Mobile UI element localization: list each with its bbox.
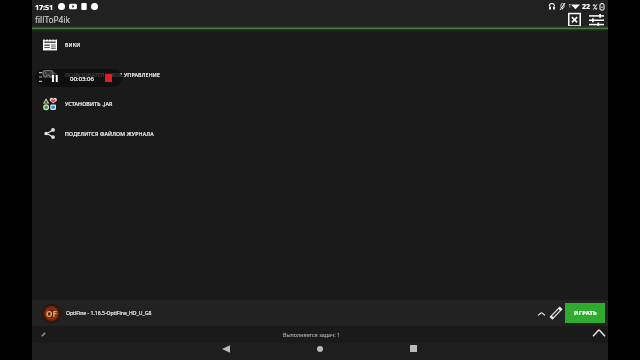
staticText: ВИКИ xyxy=(65,41,81,48)
button[interactable]: УСТАНОВИТЬ .JAR xyxy=(32,88,608,118)
staticText: OptiFine - 1.16.5-OptiFine_HD_U_G8 xyxy=(66,310,152,317)
button[interactable]: Screen recorder controls xyxy=(35,69,122,87)
button[interactable]: Expand xyxy=(535,307,548,320)
button[interactable]: ВИКИ xyxy=(32,29,608,59)
staticText: fillToP4ik xyxy=(35,14,71,25)
staticText: ПОЛЬЗОВАТЕЛЬСКОЕ УПРАВЛЕНИЕ xyxy=(65,71,161,78)
button[interactable]: Back xyxy=(216,340,236,357)
staticText: ПОДЕЛИТСЯ ФАЙЛОМ ЖУРНАЛА xyxy=(65,130,154,137)
staticText: 00:03:06 xyxy=(70,75,94,83)
staticText: 22 xyxy=(582,2,591,12)
button[interactable]: ИГРАТЬ xyxy=(565,303,605,323)
button[interactable]: Expand tasks xyxy=(591,325,607,341)
button[interactable]: ПОДЕЛИТСЯ ФАЙЛОМ ЖУРНАЛА xyxy=(32,118,608,148)
button[interactable]: ПОЛЬЗОВАТЕЛЬСКОЕ УПРАВЛЕНИЕ xyxy=(32,59,608,89)
staticText: Выполняется задач: 1 xyxy=(283,331,341,338)
button[interactable]: Stop recording xyxy=(103,72,114,83)
staticText: ИГРАТЬ xyxy=(574,309,597,317)
button[interactable]: Edit profile xyxy=(549,306,563,320)
staticText: 17:51 xyxy=(35,2,53,12)
button[interactable]: Home xyxy=(310,340,330,357)
button[interactable]: Recents xyxy=(403,340,423,357)
staticText: OF xyxy=(46,308,57,319)
button[interactable]: Settings xyxy=(588,13,604,26)
button[interactable]: Close xyxy=(567,13,582,26)
staticText: УСТАНОВИТЬ .JAR xyxy=(65,100,113,107)
